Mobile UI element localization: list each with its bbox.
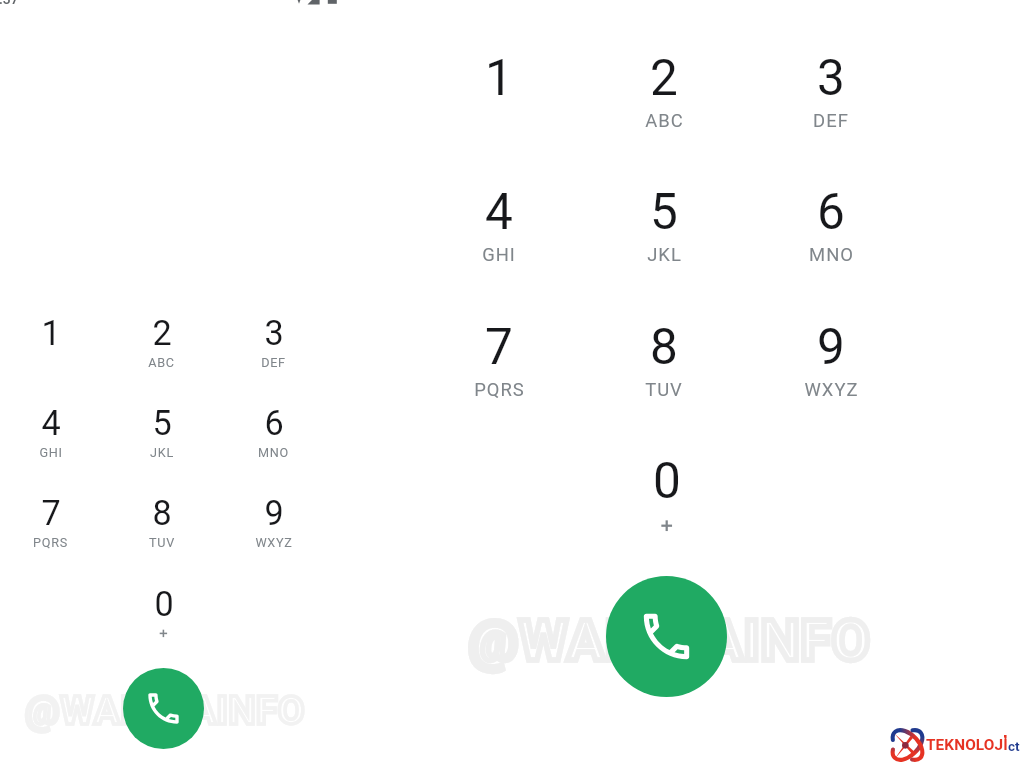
button[interactable]: 8 <box>120 487 203 548</box>
staticText: TEKNOLOJİ <box>926 736 1008 754</box>
staticText: TUV <box>645 379 683 401</box>
staticText: DEF <box>813 110 849 132</box>
button[interactable]: 9 <box>771 309 891 397</box>
button[interactable]: 7 <box>9 487 92 548</box>
staticText: 5 <box>650 183 678 241</box>
button[interactable]: 5 <box>604 174 724 262</box>
button[interactable]: 8 <box>604 309 724 397</box>
staticText: JKL <box>150 445 174 460</box>
staticText: TUV <box>149 535 175 550</box>
staticText: @WABETAINFO <box>468 608 871 673</box>
staticText: PQRS <box>474 379 525 401</box>
staticText: :37 <box>0 0 19 7</box>
staticText: MNO <box>809 244 854 266</box>
staticText: WXYZ <box>255 535 293 550</box>
button[interactable]: Call <box>123 668 204 749</box>
button[interactable]: 2 <box>120 307 203 368</box>
button[interactable]: 6 <box>232 397 315 458</box>
button[interactable]: 0 <box>607 443 727 531</box>
button[interactable]: 2 <box>604 40 724 128</box>
staticText: 7 <box>41 493 61 533</box>
staticText: GHI <box>482 244 516 266</box>
staticText: WXYZ <box>804 379 859 401</box>
staticText: 0 <box>653 452 681 510</box>
button[interactable]: 3 <box>771 40 891 128</box>
staticText: 3 <box>817 49 845 107</box>
staticText: 0 <box>154 584 174 624</box>
staticText: ABC <box>645 110 684 132</box>
staticText: 1 <box>41 313 61 353</box>
button[interactable]: 0 <box>122 578 205 639</box>
staticText: 3 <box>264 313 284 353</box>
staticText: MNO <box>258 445 289 460</box>
staticText: DEF <box>261 355 286 370</box>
staticText: 6 <box>817 183 845 241</box>
staticText: 4 <box>41 403 61 443</box>
staticText: 8 <box>152 493 172 533</box>
staticText: 9 <box>817 318 845 376</box>
staticText: 6 <box>264 403 284 443</box>
staticText: 9 <box>264 493 284 533</box>
button[interactable]: 1 <box>439 40 559 128</box>
staticText: JKL <box>647 244 682 266</box>
button[interactable]: Call <box>606 576 727 697</box>
button[interactable]: 7 <box>439 309 559 397</box>
button[interactable]: 9 <box>232 487 315 548</box>
staticText: 2 <box>152 313 172 353</box>
staticText: PQRS <box>33 535 68 550</box>
button[interactable]: Teknolojict <box>886 724 1024 768</box>
staticText: 2 <box>650 49 678 107</box>
staticText: 4 <box>485 183 513 241</box>
staticText: ct <box>1008 738 1020 754</box>
staticText: 7 <box>485 318 513 376</box>
staticText: 5 <box>152 403 172 443</box>
button[interactable]: 5 <box>120 397 203 458</box>
button[interactable]: 4 <box>439 174 559 262</box>
staticText: ABC <box>148 355 175 370</box>
button[interactable]: 4 <box>9 397 92 458</box>
staticText: 8 <box>650 318 678 376</box>
staticText: 1 <box>485 49 513 107</box>
button[interactable]: 1 <box>9 307 92 368</box>
staticText: @WABETAINFO <box>25 688 305 733</box>
button[interactable]: 6 <box>771 174 891 262</box>
button[interactable]: 3 <box>232 307 315 368</box>
staticText: GHI <box>39 445 63 460</box>
